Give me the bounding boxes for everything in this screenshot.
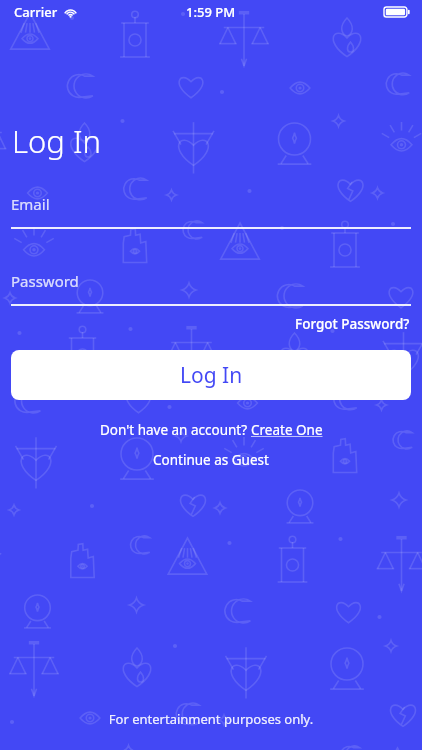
staticText: Forgot Password? — [295, 315, 410, 333]
staticText: Password — [11, 271, 79, 291]
staticText: 1:59 PM — [186, 3, 236, 21]
staticText: Continue as Guest — [153, 451, 269, 469]
staticText: Log In — [12, 120, 101, 162]
button[interactable]: Password — [11, 271, 411, 306]
button[interactable]: Log In — [11, 350, 411, 400]
staticText: Log In — [180, 361, 243, 390]
button[interactable]: Forgot Password? — [283, 313, 422, 335]
staticText: For entertainment purposes only. — [0, 710, 422, 728]
button[interactable]: Create One — [251, 421, 323, 439]
button[interactable]: Continue as Guest — [0, 451, 422, 469]
staticText: Email — [11, 194, 50, 214]
staticText: Carrier — [14, 3, 58, 21]
button[interactable]: Email — [11, 194, 411, 229]
staticText: Don't have an account? — [100, 421, 251, 439]
staticText: Create One — [251, 421, 323, 439]
